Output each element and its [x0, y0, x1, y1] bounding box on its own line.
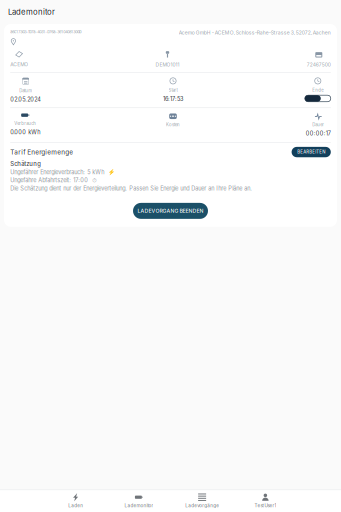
- staticText: 16:17:53: [163, 96, 183, 102]
- staticText: Ungefähre Abfahrtszeit: 17:00 ⏱: [10, 177, 96, 184]
- staticText: Ungefährer Energieverbrauch: 5 kWh ⚡: [10, 169, 115, 175]
- staticText: Ladevorgänge: [185, 503, 219, 508]
- staticText: Datum: [19, 88, 32, 93]
- staticText: Acemo GmbH - ACEMO, Schloss-Rahe-Strasse…: [179, 29, 331, 36]
- staticText: Kosten: [166, 122, 180, 127]
- staticText: Start: [168, 88, 177, 93]
- staticText: Schätzung: [10, 160, 41, 167]
- staticText: a6c173d3-fb7a-4031-b76a-3e10408130db: [10, 29, 81, 34]
- staticText: BEARBEITEN: [297, 149, 325, 155]
- staticText: Die Schätzung dient nur der Energieverte…: [10, 185, 252, 192]
- staticText: 00:00:17: [306, 130, 331, 137]
- staticText: Lademonitor: [8, 7, 55, 17]
- button[interactable]: BEARBEITEN: [292, 147, 331, 157]
- staticText: Verbrauch: [14, 121, 36, 126]
- button[interactable]: Laden: [44, 492, 107, 509]
- staticText: Test User1: [254, 503, 276, 508]
- staticText: 02.05.2024: [10, 96, 41, 103]
- button[interactable]: Ladevorgänge: [170, 492, 234, 509]
- staticText: Dauer: [312, 122, 324, 127]
- staticText: ACEMO: [10, 61, 28, 67]
- staticText: Tarif Energiemenge: [10, 148, 73, 156]
- staticText: 0.000 kWh: [10, 129, 40, 136]
- staticText: 72467500: [307, 62, 331, 68]
- staticText: LADEVORGANG BEENDEN: [137, 208, 203, 214]
- button[interactable]: LADEVORGANG BEENDEN: [133, 203, 208, 219]
- staticText: Ende: [312, 88, 323, 93]
- staticText: Lademonitor: [124, 503, 153, 508]
- staticText: Laden: [68, 503, 83, 508]
- button[interactable]: Lademonitor: [107, 492, 170, 509]
- button[interactable]: Test User1: [234, 492, 297, 509]
- staticText: DEMO1011: [155, 62, 179, 68]
